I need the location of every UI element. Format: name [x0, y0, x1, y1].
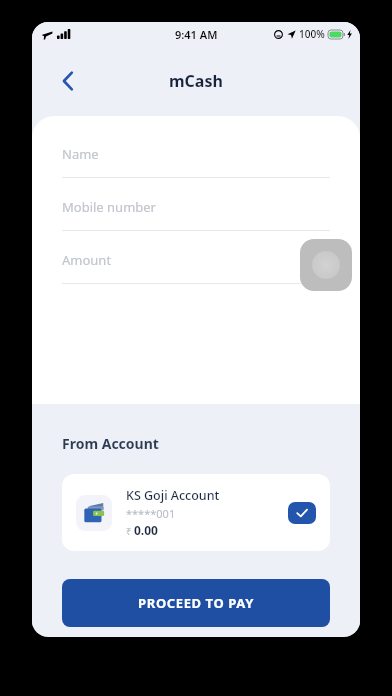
staticText: Amount: [62, 251, 112, 269]
staticText: 9:41 AM: [175, 27, 218, 42]
staticText: 0.00: [134, 522, 158, 538]
staticText: PROCEED TO PAY: [138, 594, 254, 612]
staticText: Name: [62, 145, 99, 163]
staticText: *****001: [126, 506, 176, 521]
button[interactable]: Avatar placeholder: [300, 239, 352, 291]
staticText: KS Goji Account: [126, 487, 220, 504]
button[interactable]: PROCEED TO PAY: [62, 579, 330, 627]
button[interactable]: Back: [50, 63, 86, 99]
button[interactable]: Mobile number: [32, 198, 360, 231]
staticText: mCash: [169, 70, 223, 92]
button[interactable]: Selected account: [288, 502, 316, 524]
button[interactable]: Name: [32, 145, 360, 178]
staticText: From Account: [62, 434, 159, 453]
staticText: 100%: [299, 27, 325, 41]
button[interactable]: Amount: [32, 251, 360, 284]
staticText: ₹: [126, 525, 132, 538]
button[interactable]: KS Goji Account: [62, 474, 330, 551]
staticText: Mobile number: [62, 198, 156, 216]
